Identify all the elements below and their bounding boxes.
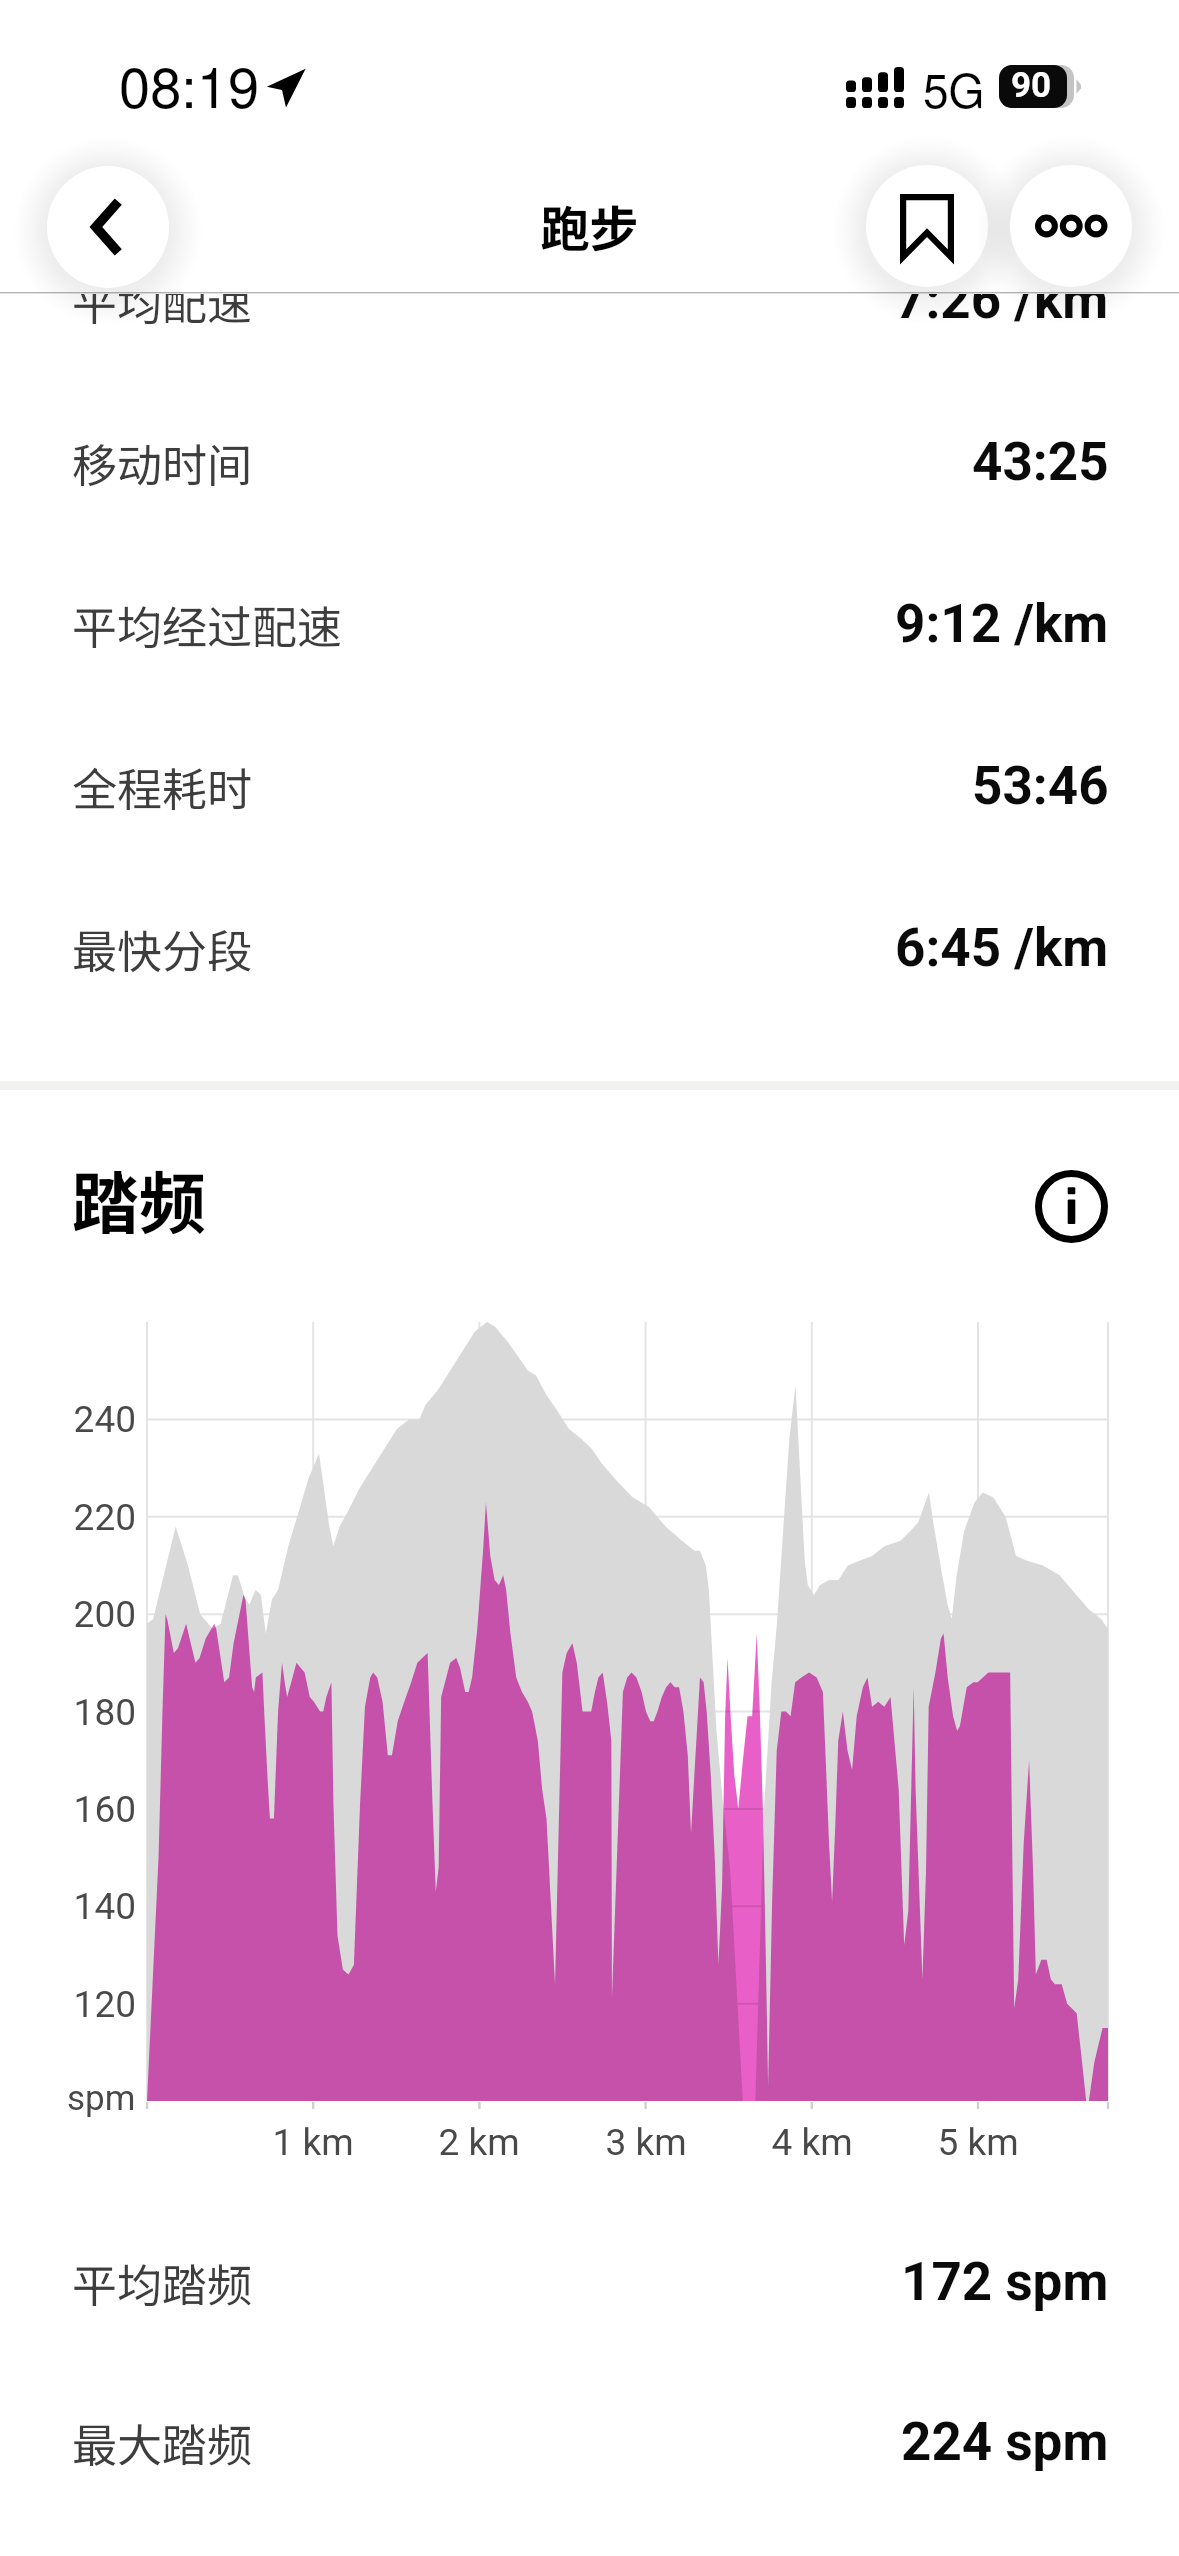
staticText: 180 <box>73 1691 136 1734</box>
staticText: 平均踏频 <box>72 2250 253 2315</box>
button[interactable]: 最快分段 <box>0 867 1179 1029</box>
button[interactable]: 移动时间 <box>0 381 1179 543</box>
staticText: 3 km <box>605 2121 687 2164</box>
staticText: 200 <box>73 1593 136 1636</box>
staticText: 1 km <box>272 2121 354 2164</box>
staticText: 172 spm <box>901 2251 1109 2313</box>
staticText: 平均配速 <box>72 268 253 333</box>
staticText: 2 km <box>438 2121 520 2164</box>
button[interactable]: Back <box>47 166 169 288</box>
staticText: 跑步 <box>0 190 1179 261</box>
staticText: 踏频 <box>72 1150 206 1247</box>
staticText: 最快分段 <box>72 916 253 981</box>
staticText: 全程耗时 <box>72 754 253 819</box>
staticText: 240 <box>73 1398 136 1441</box>
staticText: 160 <box>73 1788 136 1831</box>
staticText: 120 <box>73 1983 136 2026</box>
staticText: 08:19 <box>119 44 260 124</box>
staticText: 53:46 <box>972 755 1109 817</box>
staticText: 140 <box>73 1885 136 1928</box>
button[interactable]: Info <box>1031 1166 1112 1247</box>
staticText: 5 km <box>937 2121 1019 2164</box>
staticText: 9:12 /km <box>895 593 1109 655</box>
button[interactable]: 平均配速 <box>0 219 1179 381</box>
staticText: 43:25 <box>972 431 1109 493</box>
button[interactable]: 最大踏频 <box>0 2361 1179 2523</box>
button[interactable]: 全程耗时 <box>0 705 1179 867</box>
button[interactable]: More options <box>1010 165 1132 287</box>
staticText: 移动时间 <box>72 430 253 495</box>
staticText: 5G <box>923 55 985 121</box>
button[interactable]: 踏频 <box>0 1123 1179 1273</box>
staticText: 224 spm <box>901 2411 1109 2473</box>
button[interactable]: 平均踏频 <box>0 2201 1179 2363</box>
button[interactable]: 平均经过配速 <box>0 543 1179 705</box>
staticText: 220 <box>73 1496 136 1539</box>
staticText: 7:26 /km <box>895 269 1109 331</box>
staticText: 平均经过配速 <box>72 592 343 657</box>
staticText: spm <box>67 2078 136 2119</box>
staticText: 4 km <box>771 2121 853 2164</box>
staticText: 最大踏频 <box>72 2410 253 2475</box>
staticText: 90 <box>1011 65 1052 106</box>
button[interactable]: Save <box>866 165 988 287</box>
staticText: 6:45 /km <box>895 917 1109 979</box>
